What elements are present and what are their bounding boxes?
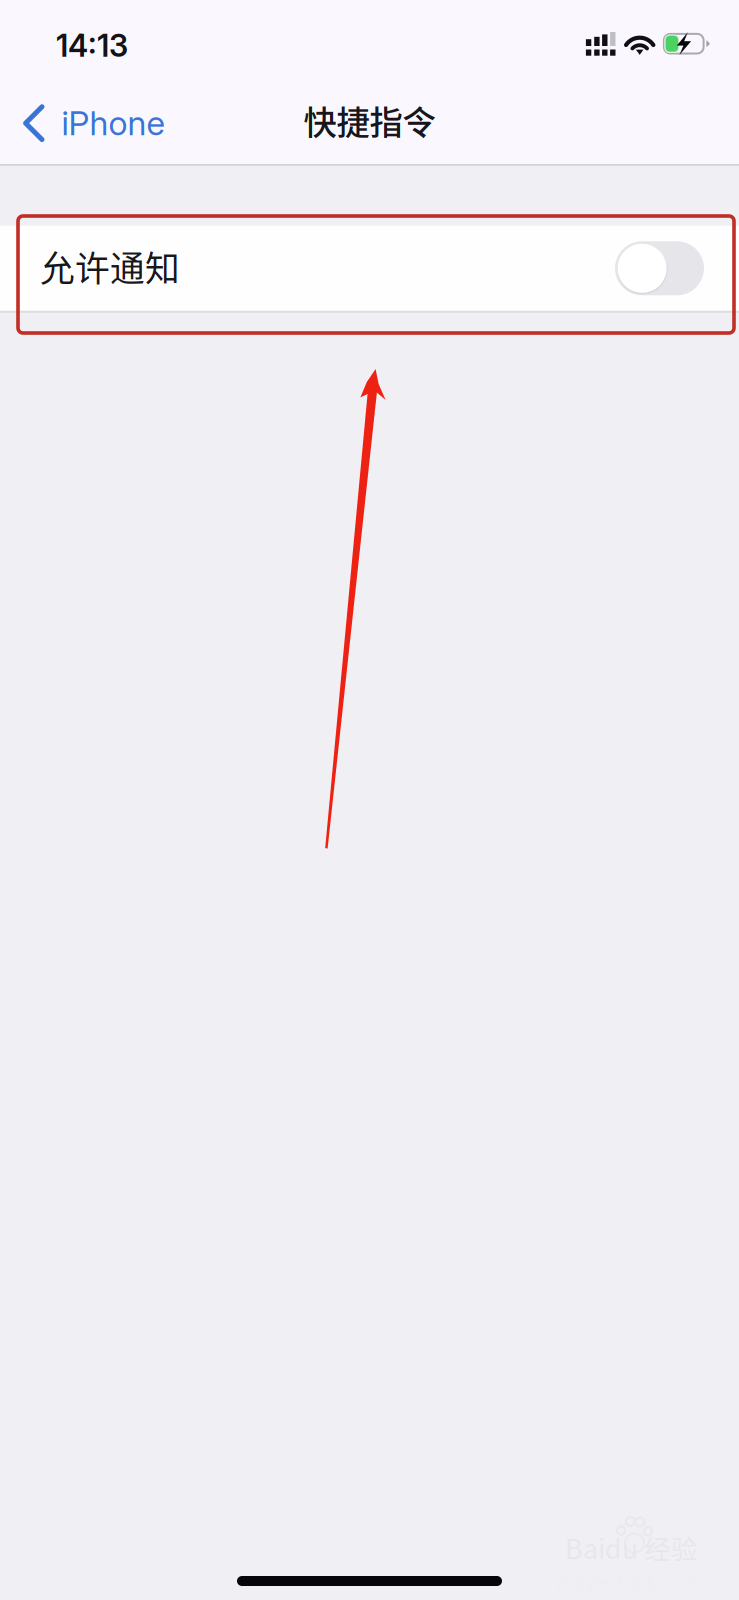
staticText: 快捷指令 [303, 96, 435, 144]
staticText: iPhone [62, 103, 165, 143]
button[interactable]: 允许通知 [0, 226, 739, 311]
staticText: 允许通知 [40, 241, 180, 291]
staticText: Baidu 经验 [565, 1528, 698, 1567]
staticText: 14:13 [56, 27, 128, 64]
button[interactable]: iPhone [0, 84, 183, 166]
